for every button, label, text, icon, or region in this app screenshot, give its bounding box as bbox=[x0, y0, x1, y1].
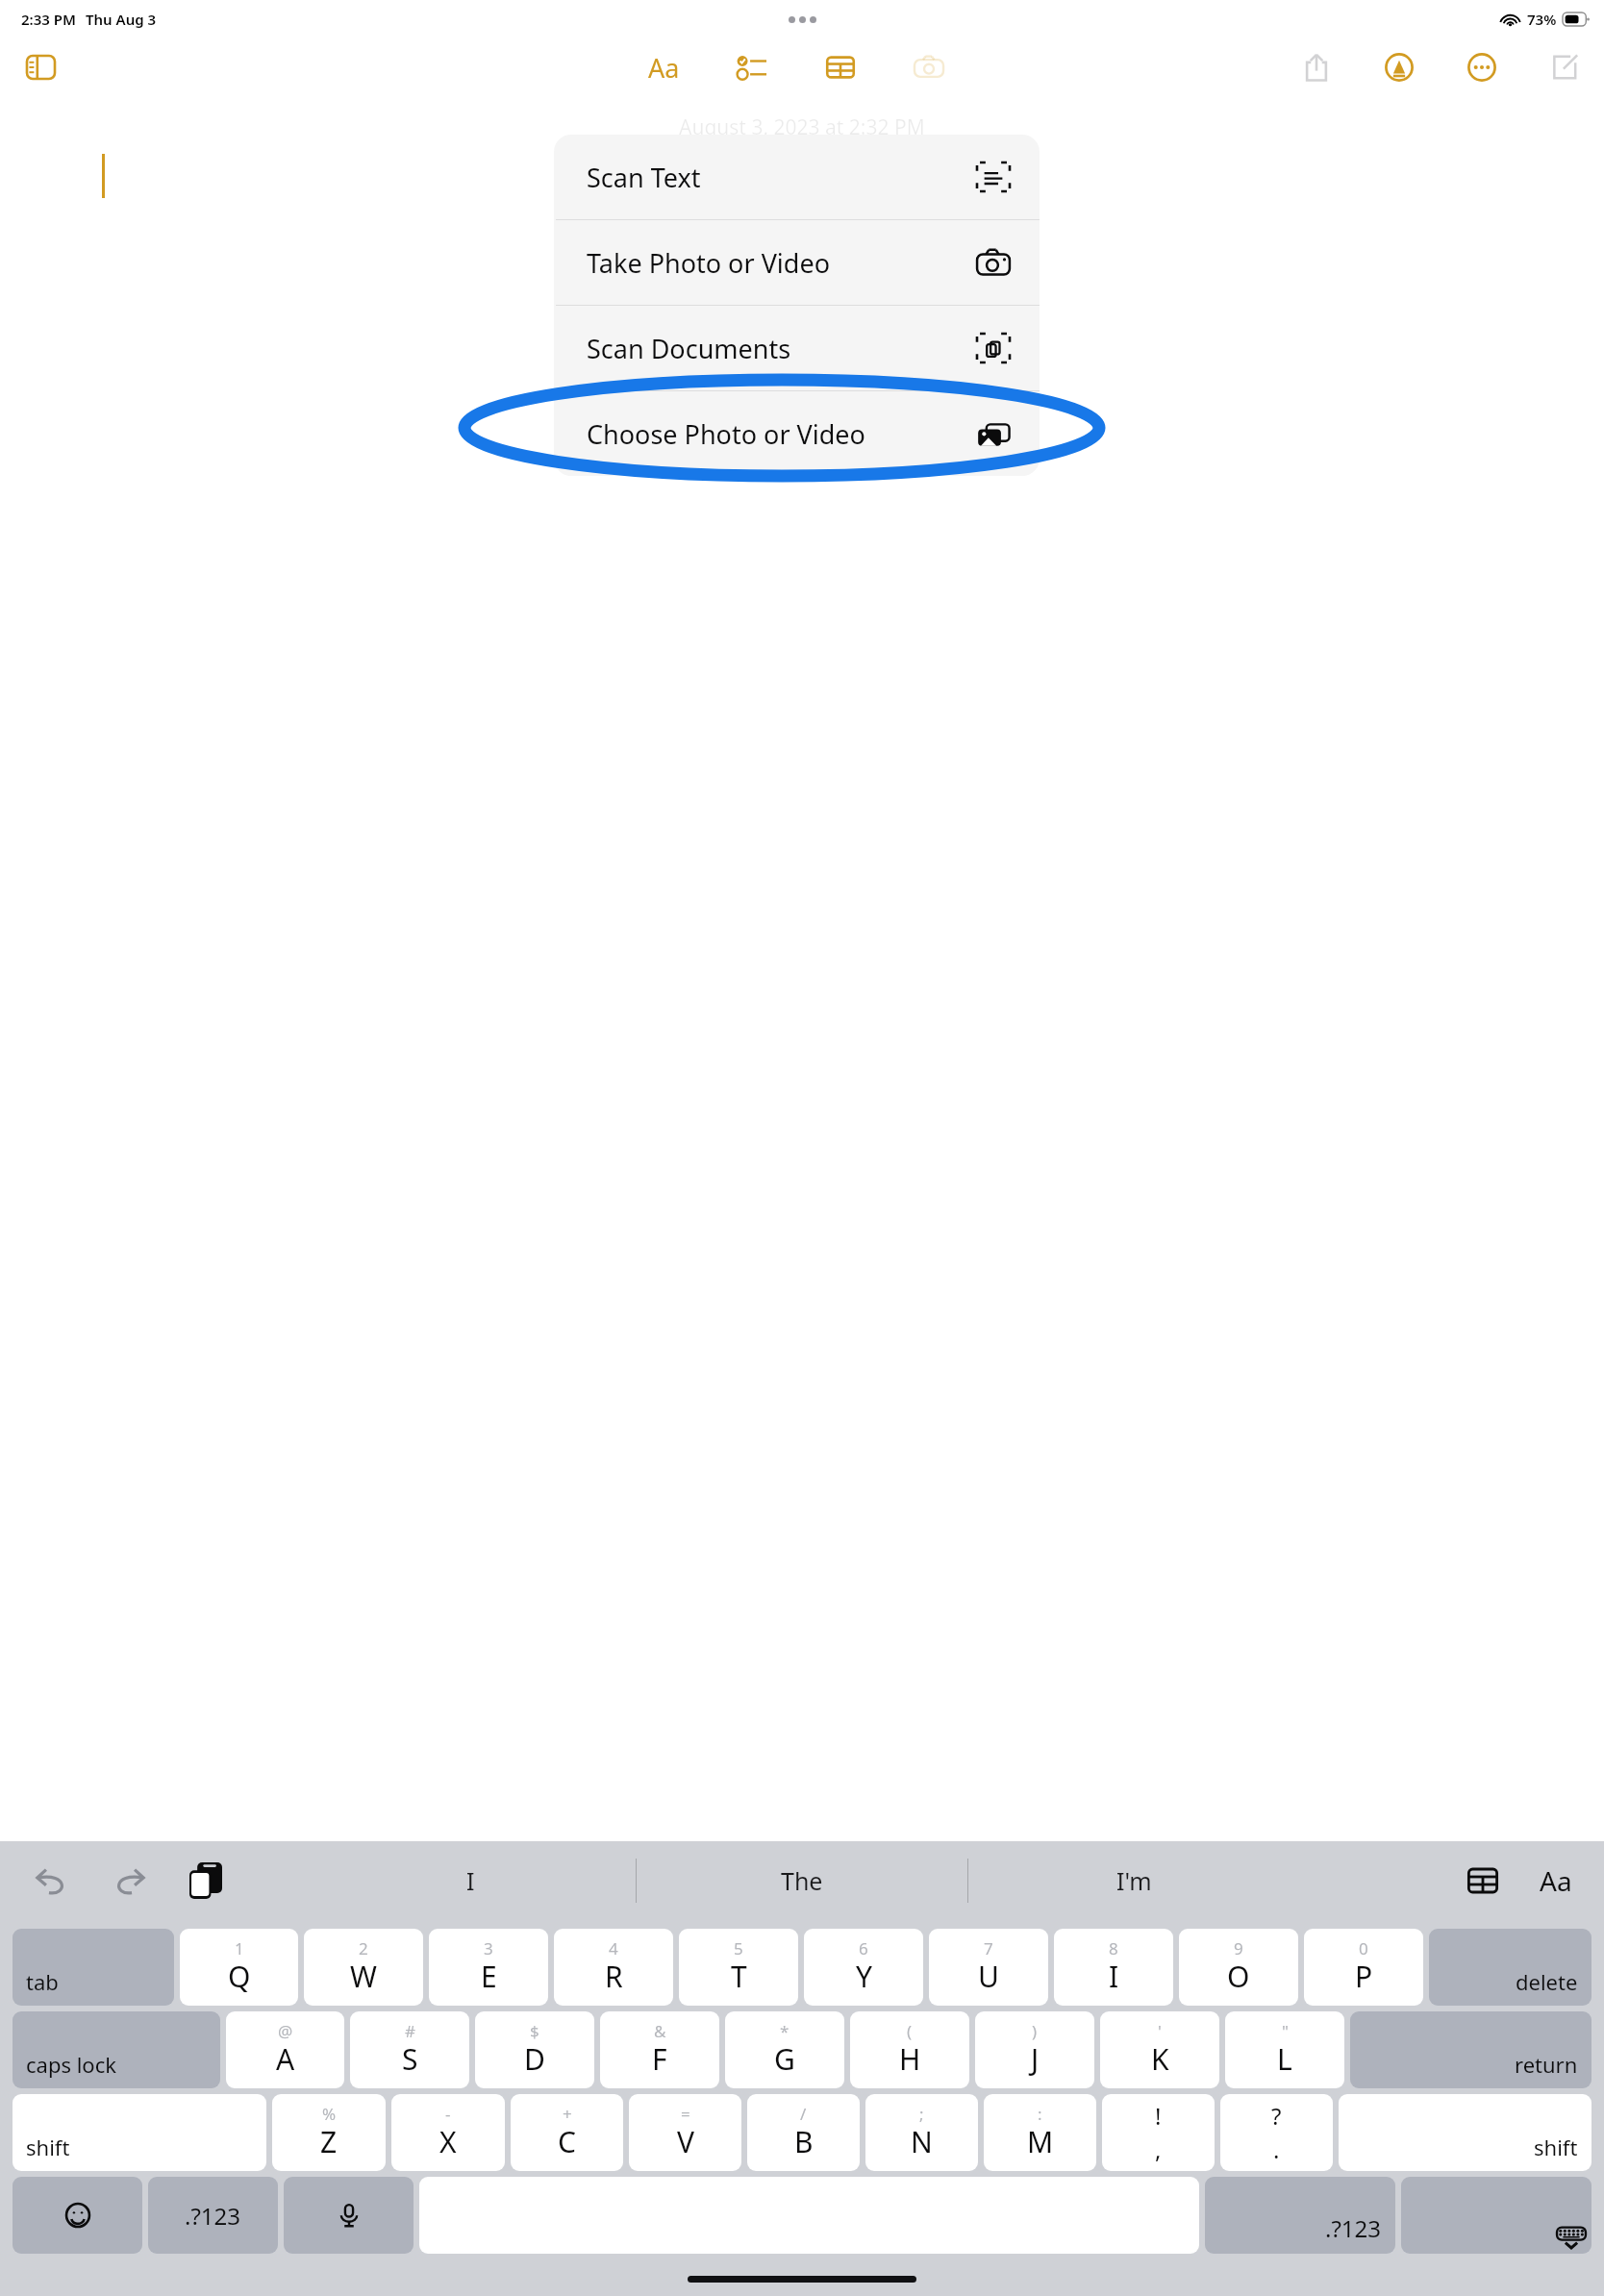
staticText: 73% bbox=[1527, 10, 1557, 29]
staticText: 7 bbox=[984, 1937, 993, 1959]
button[interactable]: delete bbox=[1429, 1929, 1591, 2006]
button[interactable]: 5 bbox=[679, 1929, 798, 2006]
button[interactable]: + bbox=[511, 2094, 623, 2171]
staticText: . bbox=[1273, 2134, 1280, 2165]
staticText: Choose Photo or Video bbox=[587, 416, 865, 452]
staticText: V bbox=[677, 2122, 694, 2161]
staticText: 6 bbox=[859, 1937, 868, 1959]
staticText: K bbox=[1151, 2039, 1169, 2079]
staticText: - bbox=[445, 2103, 451, 2125]
button[interactable]: Redo bbox=[104, 1856, 154, 1906]
button[interactable]: Show sidebar bbox=[15, 42, 65, 92]
button[interactable]: 8 bbox=[1054, 1929, 1173, 2006]
button[interactable]: .?123 bbox=[1205, 2177, 1395, 2254]
button[interactable]: Undo bbox=[27, 1856, 77, 1906]
button[interactable]: Scan Documents bbox=[554, 306, 1040, 390]
button[interactable]: caps lock bbox=[13, 2011, 220, 2088]
button[interactable]: 6 bbox=[804, 1929, 923, 2006]
staticText: shift bbox=[1534, 2133, 1578, 2161]
button[interactable]: I bbox=[305, 1841, 636, 1920]
staticText: W bbox=[350, 1957, 377, 1996]
button[interactable]: - bbox=[391, 2094, 505, 2171]
button[interactable]: 7 bbox=[929, 1929, 1048, 2006]
button[interactable]: The bbox=[637, 1841, 967, 1920]
staticText: E bbox=[481, 1957, 497, 1996]
staticText: ; bbox=[919, 2103, 924, 2125]
button[interactable]: tab bbox=[13, 1929, 174, 2006]
button[interactable]: / bbox=[747, 2094, 860, 2171]
staticText: 2 bbox=[359, 1937, 368, 1959]
button[interactable]: : bbox=[984, 2094, 1096, 2171]
button[interactable]: Table bbox=[1458, 1856, 1508, 1906]
button[interactable]: % bbox=[272, 2094, 386, 2171]
staticText: ) bbox=[1032, 2020, 1038, 2042]
button[interactable]: Take Photo or Video bbox=[554, 220, 1040, 305]
button[interactable]: Share bbox=[1294, 45, 1339, 89]
staticText: Thu Aug 3 bbox=[86, 10, 157, 29]
button[interactable]: More bbox=[1460, 45, 1504, 89]
staticText: Z bbox=[320, 2122, 338, 2161]
button[interactable]: New note bbox=[1542, 45, 1587, 89]
staticText: F bbox=[652, 2039, 667, 2079]
staticText: O bbox=[1227, 1957, 1250, 1996]
staticText: ! bbox=[1155, 2100, 1162, 2132]
staticText: M bbox=[1027, 2122, 1054, 2161]
button[interactable]: 3 bbox=[429, 1929, 548, 2006]
button[interactable]: Markup bbox=[1377, 45, 1421, 89]
button[interactable]: ; bbox=[865, 2094, 978, 2171]
button[interactable]: # bbox=[350, 2011, 469, 2088]
button[interactable]: Checklist bbox=[730, 45, 774, 89]
button[interactable]: " bbox=[1225, 2011, 1344, 2088]
staticText: 2:33 PM bbox=[21, 10, 76, 29]
button[interactable]: Emoji bbox=[13, 2177, 142, 2254]
button[interactable]: Choose Photo or Video bbox=[554, 391, 1040, 476]
staticText: H bbox=[899, 2039, 921, 2079]
button[interactable]: Format bbox=[1531, 1856, 1581, 1906]
button[interactable]: = bbox=[629, 2094, 741, 2171]
button[interactable]: Table bbox=[818, 45, 863, 89]
staticText: 0 bbox=[1359, 1937, 1368, 1959]
button[interactable]: Scan Text bbox=[554, 135, 1040, 219]
staticText: S bbox=[402, 2039, 418, 2079]
button[interactable]: ( bbox=[850, 2011, 969, 2088]
button[interactable]: 1 bbox=[180, 1929, 298, 2006]
button[interactable]: Hide keyboard bbox=[1401, 2177, 1591, 2254]
button[interactable]: $ bbox=[475, 2011, 594, 2088]
button[interactable]: Format text bbox=[641, 45, 686, 89]
staticText: 3 bbox=[484, 1937, 493, 1959]
button[interactable]: 2 bbox=[304, 1929, 423, 2006]
button[interactable]: 0 bbox=[1304, 1929, 1423, 2006]
button[interactable]: shift bbox=[1339, 2094, 1591, 2171]
button[interactable]: shift bbox=[13, 2094, 266, 2171]
button[interactable]: ! bbox=[1102, 2094, 1215, 2171]
button[interactable]: ) bbox=[975, 2011, 1094, 2088]
button[interactable]: ? bbox=[1220, 2094, 1333, 2171]
button[interactable]: * bbox=[725, 2011, 844, 2088]
button[interactable]: 9 bbox=[1179, 1929, 1298, 2006]
button[interactable]: .?123 bbox=[148, 2177, 278, 2254]
button[interactable]: Dictation bbox=[284, 2177, 414, 2254]
staticText: .?123 bbox=[185, 2200, 241, 2232]
staticText: ( bbox=[907, 2020, 913, 2042]
staticText: T bbox=[731, 1957, 747, 1996]
staticText: D bbox=[524, 2039, 545, 2079]
button[interactable]: @ bbox=[226, 2011, 344, 2088]
button[interactable]: ' bbox=[1100, 2011, 1219, 2088]
staticText: Aa bbox=[648, 50, 680, 86]
button[interactable]: I'm bbox=[968, 1841, 1299, 1920]
button[interactable]: Insert media bbox=[907, 45, 951, 89]
staticText: The bbox=[781, 1864, 823, 1897]
button[interactable]: Paste bbox=[181, 1856, 231, 1906]
staticText: August 3, 2023 at 2:32 PM bbox=[679, 113, 925, 141]
staticText: Scan Text bbox=[587, 160, 701, 195]
button[interactable]: & bbox=[600, 2011, 719, 2088]
button[interactable]: 4 bbox=[554, 1929, 673, 2006]
staticText: Take Photo or Video bbox=[587, 245, 830, 281]
staticText: U bbox=[978, 1957, 999, 1996]
staticText: ? bbox=[1271, 2100, 1282, 2132]
staticText: 8 bbox=[1109, 1937, 1118, 1959]
staticText: J bbox=[1031, 2039, 1040, 2079]
staticText: : bbox=[1038, 2103, 1042, 2125]
button[interactable]: return bbox=[1350, 2011, 1591, 2088]
